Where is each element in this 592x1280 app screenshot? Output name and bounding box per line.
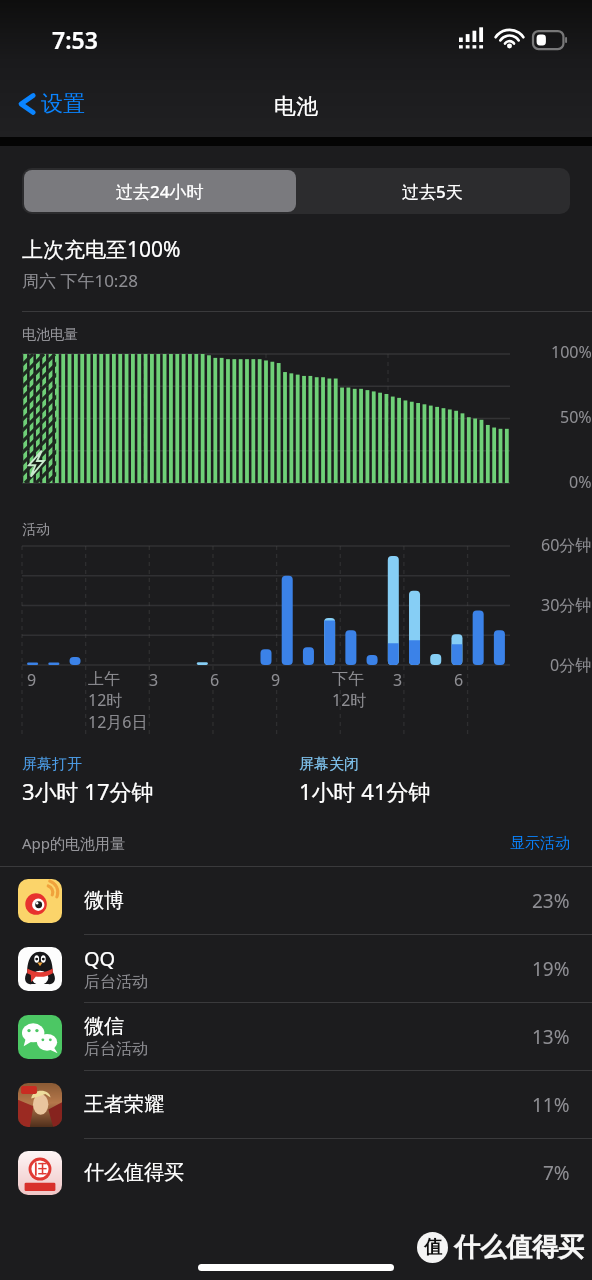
staticText: 3: [149, 669, 159, 691]
staticText: 19%: [532, 956, 570, 982]
staticText: App的电池用量: [22, 833, 126, 853]
staticText: 值: [424, 1236, 442, 1259]
staticText: 屏幕关闭: [299, 755, 359, 774]
staticText: 微信: [84, 1014, 124, 1039]
staticText: 周六 下午10:28: [22, 269, 138, 292]
staticText: 0%: [569, 471, 592, 493]
staticText: 100%: [551, 341, 592, 363]
button[interactable]: 微信: [0, 1003, 592, 1071]
staticText: 13%: [532, 1024, 570, 1050]
button[interactable]: 什么值得买: [0, 1139, 592, 1206]
button[interactable]: 显示活动: [510, 834, 570, 853]
staticText: 后台活动: [84, 972, 148, 992]
button[interactable]: 设置: [12, 85, 87, 123]
staticText: 7:53: [52, 24, 98, 55]
staticText: 上午 12时 12月6日: [88, 669, 148, 733]
staticText: 下午 12时: [332, 669, 367, 711]
staticText: 1小时 41分钟: [299, 776, 431, 806]
staticText: 电池电量: [22, 326, 78, 344]
staticText: 王者荣耀: [84, 1092, 164, 1117]
staticText: 0分钟: [550, 654, 592, 676]
staticText: 6: [210, 669, 220, 691]
staticText: 什么值得买: [454, 1231, 584, 1264]
staticText: 9: [271, 669, 281, 691]
other: Battery: [533, 31, 568, 49]
staticText: 3: [393, 669, 403, 691]
other: Cellular signal: [459, 30, 486, 50]
staticText: 屏幕打开: [22, 755, 82, 774]
button[interactable]: 王者荣耀: [0, 1071, 592, 1139]
staticText: 电池: [274, 93, 318, 121]
staticText: 3小时 17分钟: [22, 776, 154, 806]
button[interactable]: 微博: [0, 867, 592, 935]
staticText: 11%: [532, 1092, 570, 1118]
staticText: 60分钟: [541, 534, 592, 556]
other: Wi-Fi: [496, 29, 523, 50]
staticText: 50%: [560, 406, 592, 428]
staticText: 设置: [41, 90, 85, 118]
staticText: 过去5天: [402, 180, 463, 203]
staticText: 23%: [532, 888, 570, 914]
staticText: 后台活动: [84, 1039, 148, 1059]
button[interactable]: 过去24小时: [24, 170, 296, 212]
staticText: 过去24小时: [116, 180, 204, 203]
button[interactable]: 过去5天: [296, 170, 568, 212]
staticText: 什么值得买: [84, 1160, 184, 1185]
staticText: 30分钟: [541, 594, 592, 616]
staticText: 活动: [22, 521, 50, 539]
staticText: QQ: [84, 945, 116, 972]
staticText: 6: [454, 669, 464, 691]
staticText: 显示活动: [510, 834, 570, 853]
staticText: 上次充电至100%: [22, 235, 181, 264]
button[interactable]: QQ: [0, 935, 592, 1003]
staticText: 9: [27, 669, 37, 691]
staticText: 微博: [84, 888, 124, 913]
staticText: 7%: [543, 1160, 570, 1186]
